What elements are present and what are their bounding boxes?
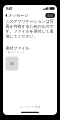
staticText: 添付ファイル (5, 46, 29, 51)
staticText: 1個のファイル (5, 51, 25, 54)
staticText: タップして送信 (19, 105, 40, 108)
button[interactable] (5, 57, 18, 71)
staticText: メッセージ (8, 13, 28, 18)
staticText: このアプリケーションは写真を共有するためのものです。ファイルを添付して送信してく… (5, 19, 53, 39)
staticText: 9:41 (5, 6, 12, 11)
button[interactable]: メッセージ (5, 13, 28, 18)
staticText: 送信 (47, 14, 53, 17)
button[interactable]: 送信 (45, 13, 55, 18)
